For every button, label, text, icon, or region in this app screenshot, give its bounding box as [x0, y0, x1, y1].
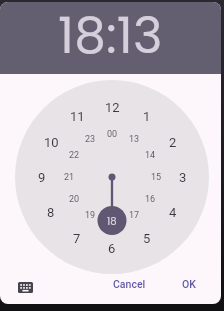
staticText: 21: [64, 172, 75, 183]
button[interactable]: [13, 275, 37, 299]
staticText: 19: [85, 210, 96, 221]
staticText: 8: [47, 205, 55, 220]
staticText: 5: [143, 231, 151, 246]
staticText: 7: [73, 231, 81, 246]
staticText: 16: [145, 194, 156, 205]
staticText: 18: [107, 214, 117, 228]
staticText: 9: [38, 170, 46, 185]
staticText: 23: [85, 134, 96, 145]
staticText: 4: [169, 205, 177, 220]
staticText: 12: [105, 100, 120, 115]
staticText: 17: [129, 210, 140, 221]
staticText: 14: [145, 150, 156, 161]
staticText: 1: [143, 109, 151, 124]
staticText: 2: [169, 135, 177, 150]
staticText: 00: [107, 129, 118, 140]
staticText: 6: [108, 241, 116, 256]
button[interactable]: Cancel: [101, 273, 157, 295]
staticText: 3: [179, 170, 187, 185]
staticText: 11: [70, 109, 85, 124]
staticText: 18:13: [58, 2, 163, 71]
staticText: 10: [44, 135, 59, 150]
staticText: 13: [129, 134, 140, 145]
staticText: 15: [151, 172, 162, 183]
staticText: 22: [69, 150, 80, 161]
staticText: 20: [69, 194, 80, 205]
staticText: OK: [182, 278, 196, 290]
button[interactable]: OK: [171, 273, 207, 295]
staticText: Cancel: [113, 278, 146, 290]
